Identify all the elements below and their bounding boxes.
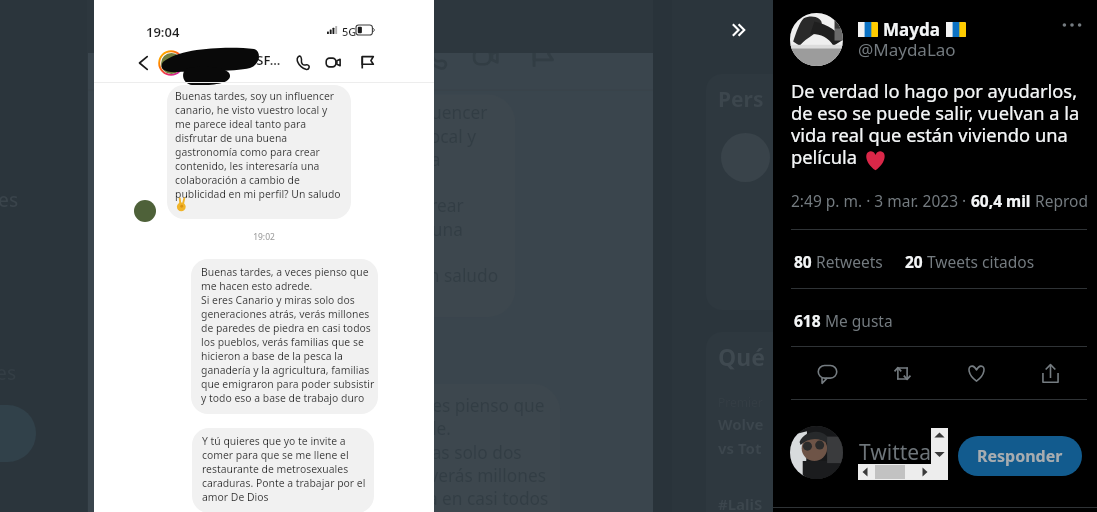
staticText: 20 [905,251,927,272]
staticText: #LaliS [718,494,763,512]
staticText: Tweets citados [927,251,1035,272]
staticText: De verdad lo hago por ayudarlos, de eso … [791,78,1083,169]
staticText: @MaydaLao [858,38,956,61]
staticText: 618 [794,310,825,331]
button[interactable]: Retwittear [885,356,919,390]
staticText: 19:02 [94,231,434,243]
button[interactable]: Foto de perfil de Mayda [790,13,843,66]
button[interactable]: Más opciones [1056,9,1088,41]
staticText: Buenas tardes, soy un influencer canario… [175,89,345,215]
staticText: Y tú quieres que yo te invite a comer pa… [202,434,373,504]
staticText: 80 [794,251,816,272]
button[interactable]: Twittear [0,405,36,462]
staticText: Me gusta [825,310,893,331]
staticText: 19:04 [146,23,180,41]
button[interactable]: Compartir [1033,356,1067,390]
staticText: Pers [718,85,764,114]
staticText: NSF... [341,53,399,68]
button[interactable]: Responder [810,356,844,390]
staticText: Qué [718,341,765,372]
staticText: es [0,187,19,213]
staticText: Retweets [816,251,883,272]
staticText: NSF... [246,51,281,69]
staticText: Twittea [859,438,931,467]
button[interactable]: Me gusta [959,356,993,390]
staticText: Buenas tardes, a veces pienso que me hac… [201,265,377,405]
button[interactable]: Qué [706,332,796,512]
staticText: Responder [977,445,1063,467]
staticText: Reprod [1035,190,1088,211]
staticText: Wolve vs Tot [718,414,764,458]
button[interactable]: Pers [706,74,796,310]
staticText: m [246,59,261,79]
staticText: Mayda [883,18,940,41]
button[interactable]: Expandir [716,7,761,52]
staticText: Buenas tardes, soy un influencer canario… [223,101,505,310]
staticText: 60,4 mil [971,190,1035,211]
button[interactable]: Responder [958,436,1082,476]
staticText: 2:49 p. m. · 3 mar. 2023 · [791,190,971,211]
staticText: 5G [342,24,357,39]
staticText: Buenas tardes, a veces pienso que me hac… [266,394,559,512]
staticText: 19:02 [88,337,653,357]
